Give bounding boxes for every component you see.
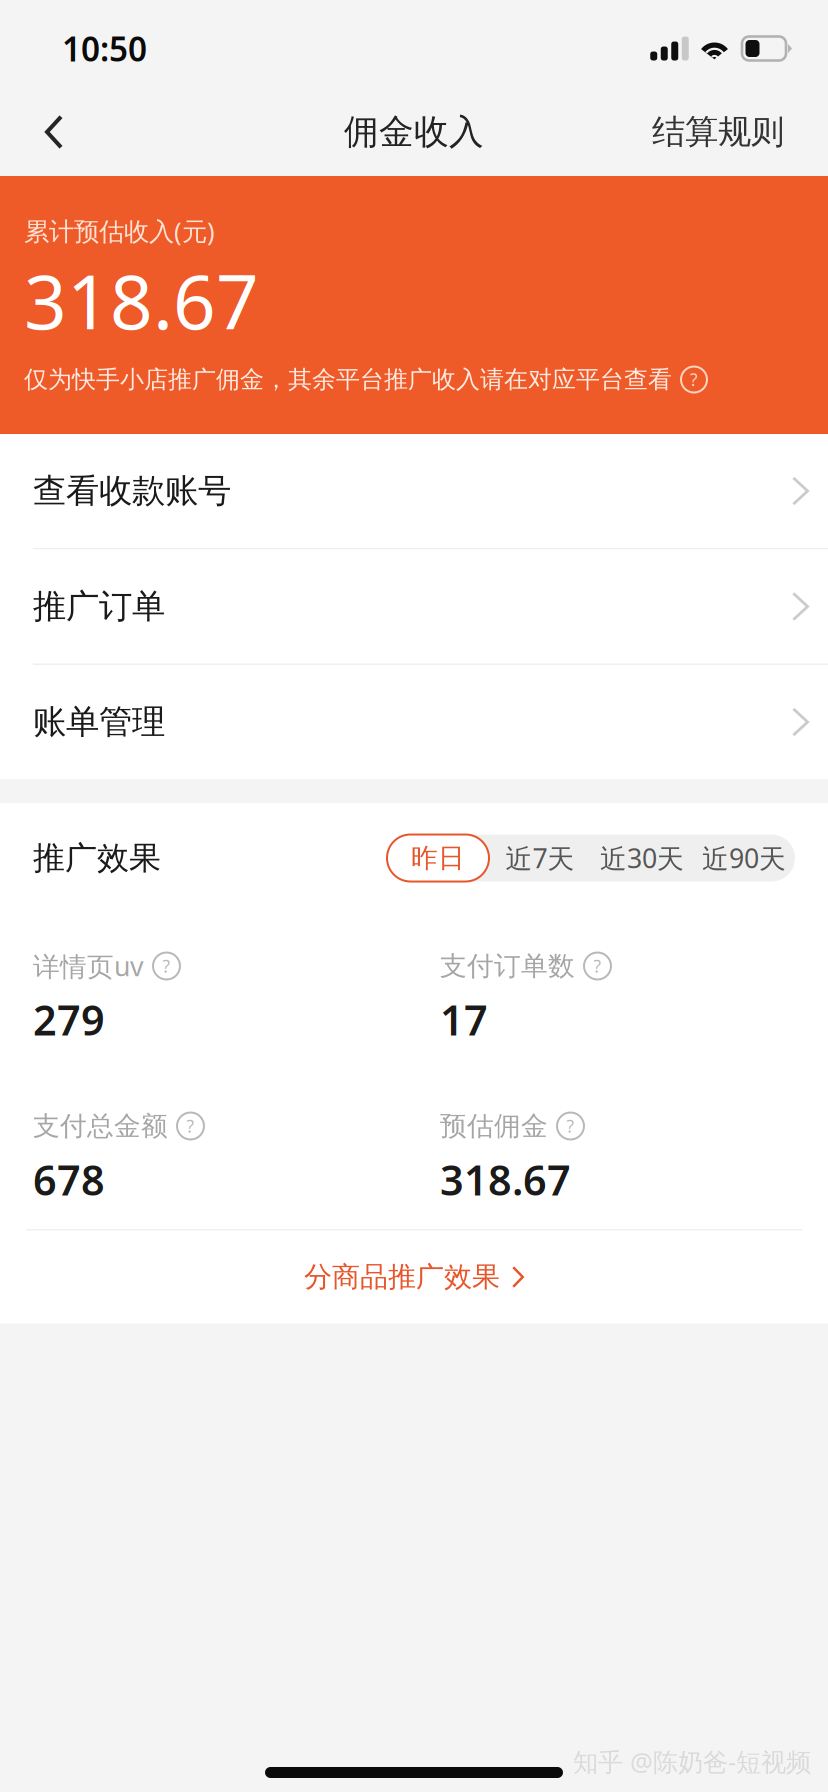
staticText: ? [186, 1114, 194, 1137]
staticText: 详情页uv [33, 948, 144, 984]
button[interactable]: 返回 [0, 88, 108, 176]
staticText: 累计预估收入(元) [24, 214, 215, 248]
button[interactable]: 分商品推广效果 [0, 1230, 828, 1323]
button[interactable]: 结算规则 [642, 88, 794, 176]
button[interactable]: 近90天 [693, 834, 795, 881]
staticText: ? [690, 368, 698, 391]
staticText: 近7天 [505, 840, 574, 876]
staticText: 佣金收入 [344, 111, 484, 153]
staticText: 结算规则 [652, 111, 784, 152]
staticText: 知乎 @陈奶爸-短视频 [573, 1745, 811, 1778]
staticText: 10:50 [62, 26, 147, 71]
staticText: 昨日 [411, 842, 465, 874]
staticText: 678 [33, 1152, 105, 1207]
button[interactable]: 查看收款账号 [0, 434, 828, 548]
staticText: 318.67 [440, 1152, 571, 1207]
staticText: 279 [33, 992, 105, 1047]
staticText: 支付订单数 [440, 950, 575, 982]
staticText: 近90天 [702, 840, 786, 876]
button[interactable]: 账单管理 [0, 665, 828, 779]
staticText: 推广订单 [33, 586, 165, 627]
staticText: 318.67 [24, 251, 259, 350]
staticText: ? [566, 1114, 574, 1137]
button[interactable]: 近30天 [591, 834, 693, 881]
staticText: 支付总金额 [33, 1110, 168, 1142]
staticText: 仅为快手小店推广佣金，其余平台推广收入请在对应平台查看 [24, 365, 672, 394]
button[interactable]: 近7天 [489, 834, 591, 881]
staticText: 推广效果 [33, 838, 161, 878]
button[interactable]: 昨日 [387, 834, 489, 881]
staticText: 查看收款账号 [33, 470, 231, 511]
staticText: 预估佣金 [440, 1110, 548, 1142]
staticText: ? [162, 954, 170, 977]
staticText: 近30天 [600, 840, 684, 876]
staticText: 17 [440, 992, 488, 1047]
button[interactable]: 推广订单 [0, 549, 828, 663]
staticText: ? [593, 954, 601, 977]
staticText: 账单管理 [33, 701, 165, 742]
staticText: 分商品推广效果 [304, 1260, 500, 1294]
